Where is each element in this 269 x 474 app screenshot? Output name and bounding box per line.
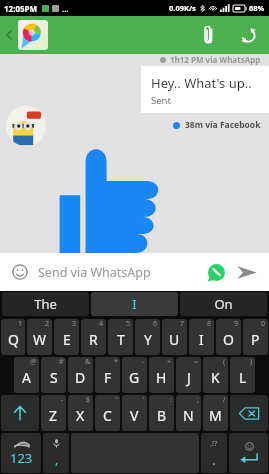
button[interactable]: 7 <box>162 319 187 355</box>
staticText: L <box>239 368 247 387</box>
button[interactable]: Back <box>0 16 18 54</box>
button[interactable] <box>6 106 46 146</box>
staticText: 9 <box>234 319 239 329</box>
staticText: C <box>103 406 112 425</box>
button[interactable]: Backspace <box>230 395 268 431</box>
staticText: H <box>156 368 167 387</box>
staticText: J <box>187 368 191 387</box>
staticText: T <box>117 330 125 349</box>
staticText: B <box>157 406 167 425</box>
button[interactable]: * <box>95 357 120 393</box>
staticText: ... <box>62 3 69 14</box>
button[interactable]: " <box>95 395 120 431</box>
staticText: / <box>223 395 226 405</box>
button[interactable]: - <box>122 357 147 393</box>
staticText: G <box>129 368 140 387</box>
staticText: ) <box>250 357 253 367</box>
button[interactable]: WhatsApp <box>203 259 229 285</box>
button[interactable]: 123 <box>1 433 41 473</box>
button[interactable]: 4 <box>81 319 106 355</box>
button[interactable]: Send via WhatsApp <box>38 264 203 281</box>
staticText: F <box>104 368 112 387</box>
button[interactable]: Send <box>233 258 261 286</box>
button[interactable]: Attach <box>189 16 227 54</box>
button[interactable]: 2 <box>27 319 52 355</box>
button[interactable]: On <box>180 292 267 316</box>
staticText: I <box>199 330 204 349</box>
staticText: X <box>76 406 85 425</box>
button[interactable]: Enter <box>229 433 268 473</box>
staticText: ,!? <box>210 438 218 448</box>
staticText: U <box>169 330 180 349</box>
staticText: Hey.. What's up.. <box>151 74 252 92</box>
button[interactable]: Refresh <box>227 16 269 54</box>
button[interactable]: - <box>41 395 66 431</box>
button[interactable]: 6 <box>135 319 160 355</box>
staticText: D <box>75 368 86 387</box>
button[interactable]: 9 <box>216 319 241 355</box>
staticText: 3 <box>72 319 77 329</box>
staticText: 1 <box>18 319 23 329</box>
button[interactable]: ' <box>122 395 147 431</box>
button[interactable]: 8 <box>189 319 214 355</box>
staticText: A <box>22 368 31 387</box>
staticText: 123 <box>10 449 33 467</box>
button[interactable]: + <box>149 357 174 393</box>
button[interactable]: Shift <box>1 395 39 431</box>
staticText: V <box>130 406 139 425</box>
staticText: ' <box>143 395 145 405</box>
staticText: 6 <box>153 319 158 329</box>
staticText: N <box>183 406 194 425</box>
button[interactable]: I <box>91 292 178 316</box>
staticText: - <box>142 357 145 367</box>
staticText: 12:05PM <box>4 3 38 14</box>
staticText: * <box>114 357 118 367</box>
button[interactable]: ; <box>176 395 201 431</box>
staticText: 4 <box>99 319 104 329</box>
staticText: $ <box>86 395 91 405</box>
button[interactable]: Hey.. What's up.. <box>141 66 269 113</box>
staticText: Y <box>144 330 152 349</box>
button[interactable]: 3 <box>54 319 79 355</box>
staticText: 0.09K/s <box>169 3 196 13</box>
button[interactable]: = <box>176 357 201 393</box>
button[interactable]: , <box>43 433 69 473</box>
staticText: E <box>63 330 71 349</box>
button[interactable]: : <box>149 395 174 431</box>
button[interactable]: & <box>68 357 93 393</box>
staticText: - <box>61 395 64 405</box>
staticText: + <box>167 357 172 367</box>
staticText: ; <box>197 395 199 405</box>
button[interactable]: ) <box>230 357 255 393</box>
staticText: 2 <box>45 319 50 329</box>
button[interactable]: Emoji <box>8 260 32 284</box>
staticText: K <box>211 368 220 387</box>
button[interactable]: 0 <box>243 319 268 355</box>
staticText: P <box>251 330 260 349</box>
staticText: 0 <box>261 319 266 329</box>
staticText: I <box>132 295 137 313</box>
staticText: S <box>50 368 58 387</box>
staticText: 7 <box>180 319 185 329</box>
button[interactable]: @ <box>14 357 39 393</box>
button[interactable]: The <box>2 292 89 316</box>
staticText: # <box>59 357 64 367</box>
staticText: = <box>194 357 199 367</box>
button[interactable]: ( <box>203 357 228 393</box>
staticText: 68% <box>249 3 265 13</box>
staticText: Q <box>8 330 19 349</box>
button[interactable]: / <box>203 395 228 431</box>
button[interactable]: $ <box>68 395 93 431</box>
staticText: @ <box>30 357 37 367</box>
button[interactable]: 1 <box>1 319 25 355</box>
staticText: The <box>34 295 57 313</box>
staticText: . <box>212 451 216 469</box>
button[interactable]: ,!? <box>201 433 227 473</box>
staticText: O <box>223 330 234 349</box>
staticText: & <box>85 357 91 367</box>
button[interactable]: # <box>41 357 66 393</box>
staticText: 1h12 PM via WhatsApp <box>170 54 261 65</box>
staticText: On <box>214 295 233 313</box>
button[interactable]: 5 <box>108 319 133 355</box>
